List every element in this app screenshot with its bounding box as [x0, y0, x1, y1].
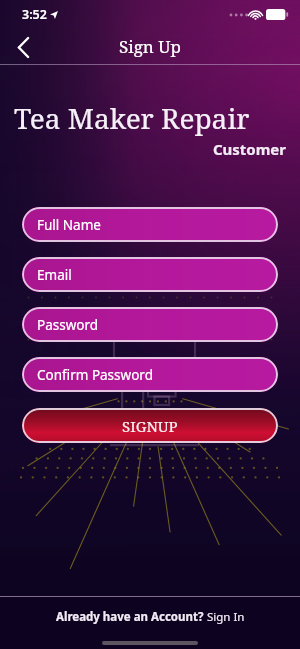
button[interactable]: SIGNUP [22, 408, 278, 443]
staticText: Password [37, 316, 99, 334]
button[interactable]: Confirm Password [22, 357, 278, 392]
button[interactable]: Password [22, 307, 278, 342]
button[interactable]: Back [6, 30, 40, 64]
staticText: Confirm Password [37, 366, 153, 384]
button[interactable]: Email [22, 257, 278, 292]
button[interactable]: Already have an Account? [56, 609, 245, 625]
staticText: 3:52 [22, 6, 47, 23]
staticText: Already have an Account? [56, 609, 207, 625]
staticText: SIGNUP [122, 416, 178, 436]
staticText: Full Name [37, 216, 101, 234]
staticText: Tea Maker Repair [14, 99, 250, 137]
staticText: Email [37, 266, 72, 284]
staticText: Customer [14, 139, 286, 159]
staticText: Sign Up [119, 35, 181, 58]
button[interactable]: Full Name [22, 207, 278, 242]
staticText: Sign In [207, 609, 245, 625]
